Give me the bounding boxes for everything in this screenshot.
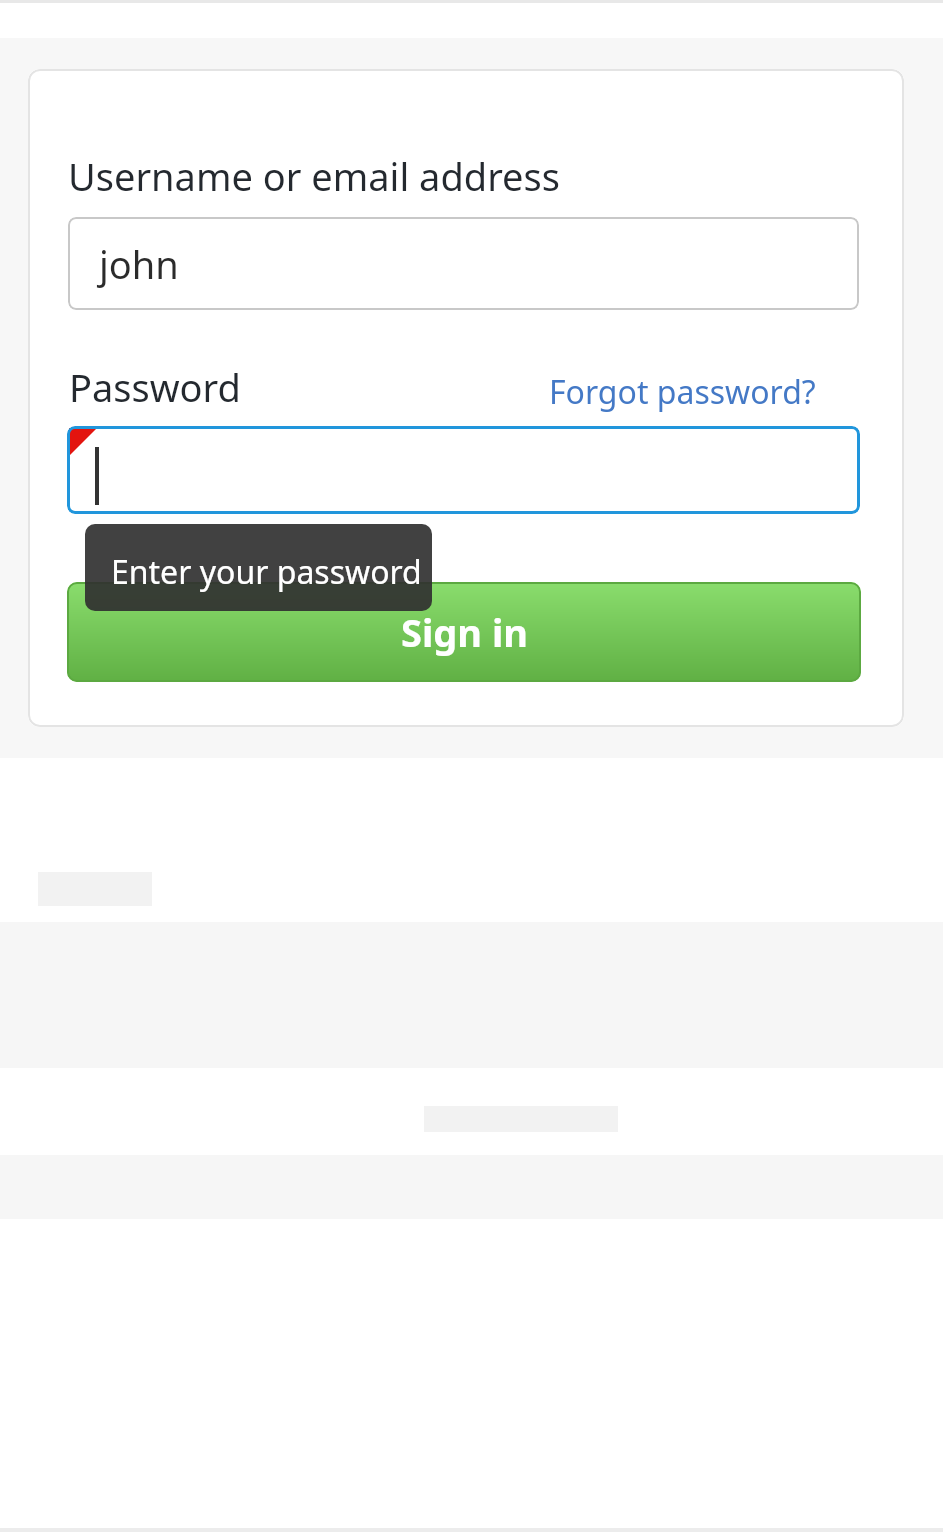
staticText: john <box>99 238 179 290</box>
staticText: Username or email address <box>68 150 560 202</box>
button[interactable]: john <box>68 217 859 310</box>
button[interactable] <box>67 426 860 514</box>
button[interactable]: Forgot password? <box>549 370 816 414</box>
staticText: Password <box>69 361 241 413</box>
button[interactable]: Sign in <box>67 582 861 682</box>
staticText: Sign in <box>401 606 528 658</box>
staticText: Enter your password <box>111 550 422 594</box>
